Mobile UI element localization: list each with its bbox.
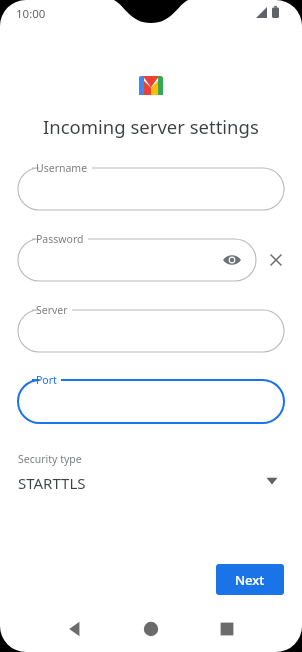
button[interactable] bbox=[18, 301, 284, 361]
button[interactable]: Back bbox=[58, 612, 92, 646]
button[interactable] bbox=[216, 564, 284, 595]
button[interactable] bbox=[18, 371, 284, 432]
button[interactable] bbox=[12, 444, 290, 502]
button[interactable]: Clear password bbox=[262, 246, 290, 274]
button[interactable] bbox=[18, 230, 256, 290]
button[interactable] bbox=[18, 159, 284, 219]
button[interactable]: Home bbox=[134, 612, 168, 646]
button[interactable]: Recent apps bbox=[210, 612, 244, 646]
